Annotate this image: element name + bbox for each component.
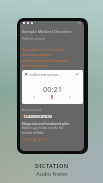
staticText: Patient record (22, 36, 45, 41)
staticText: Sample Medical Dictation (22, 29, 72, 35)
staticText: Assessment (22, 107, 41, 112)
staticText: Diagnosis and treatment plan (22, 121, 70, 126)
button[interactable]: Delete (32, 95, 36, 99)
staticText: follow up in two weeks for (22, 125, 64, 130)
staticText: with shortness of breath and (22, 58, 68, 63)
button[interactable]: Close (24, 72, 28, 76)
staticText: male who presents (22, 52, 53, 57)
staticText: the patient is a 72 year old (22, 47, 65, 52)
staticText: 00:21 (22, 84, 83, 94)
button[interactable]: Record (49, 94, 55, 100)
staticText: DICTATION (35, 162, 69, 169)
button[interactable]: Confirm (75, 72, 79, 76)
button[interactable]: More (68, 95, 72, 99)
staticText: CLASSIFICATION (24, 114, 52, 119)
staticText: CLINICAL NOTE (22, 137, 47, 142)
staticText: Audio Notes (36, 170, 68, 177)
staticText: review of labs (22, 130, 44, 135)
staticText: edit instruction... (30, 72, 62, 77)
staticText: chest discomfort (22, 63, 49, 68)
